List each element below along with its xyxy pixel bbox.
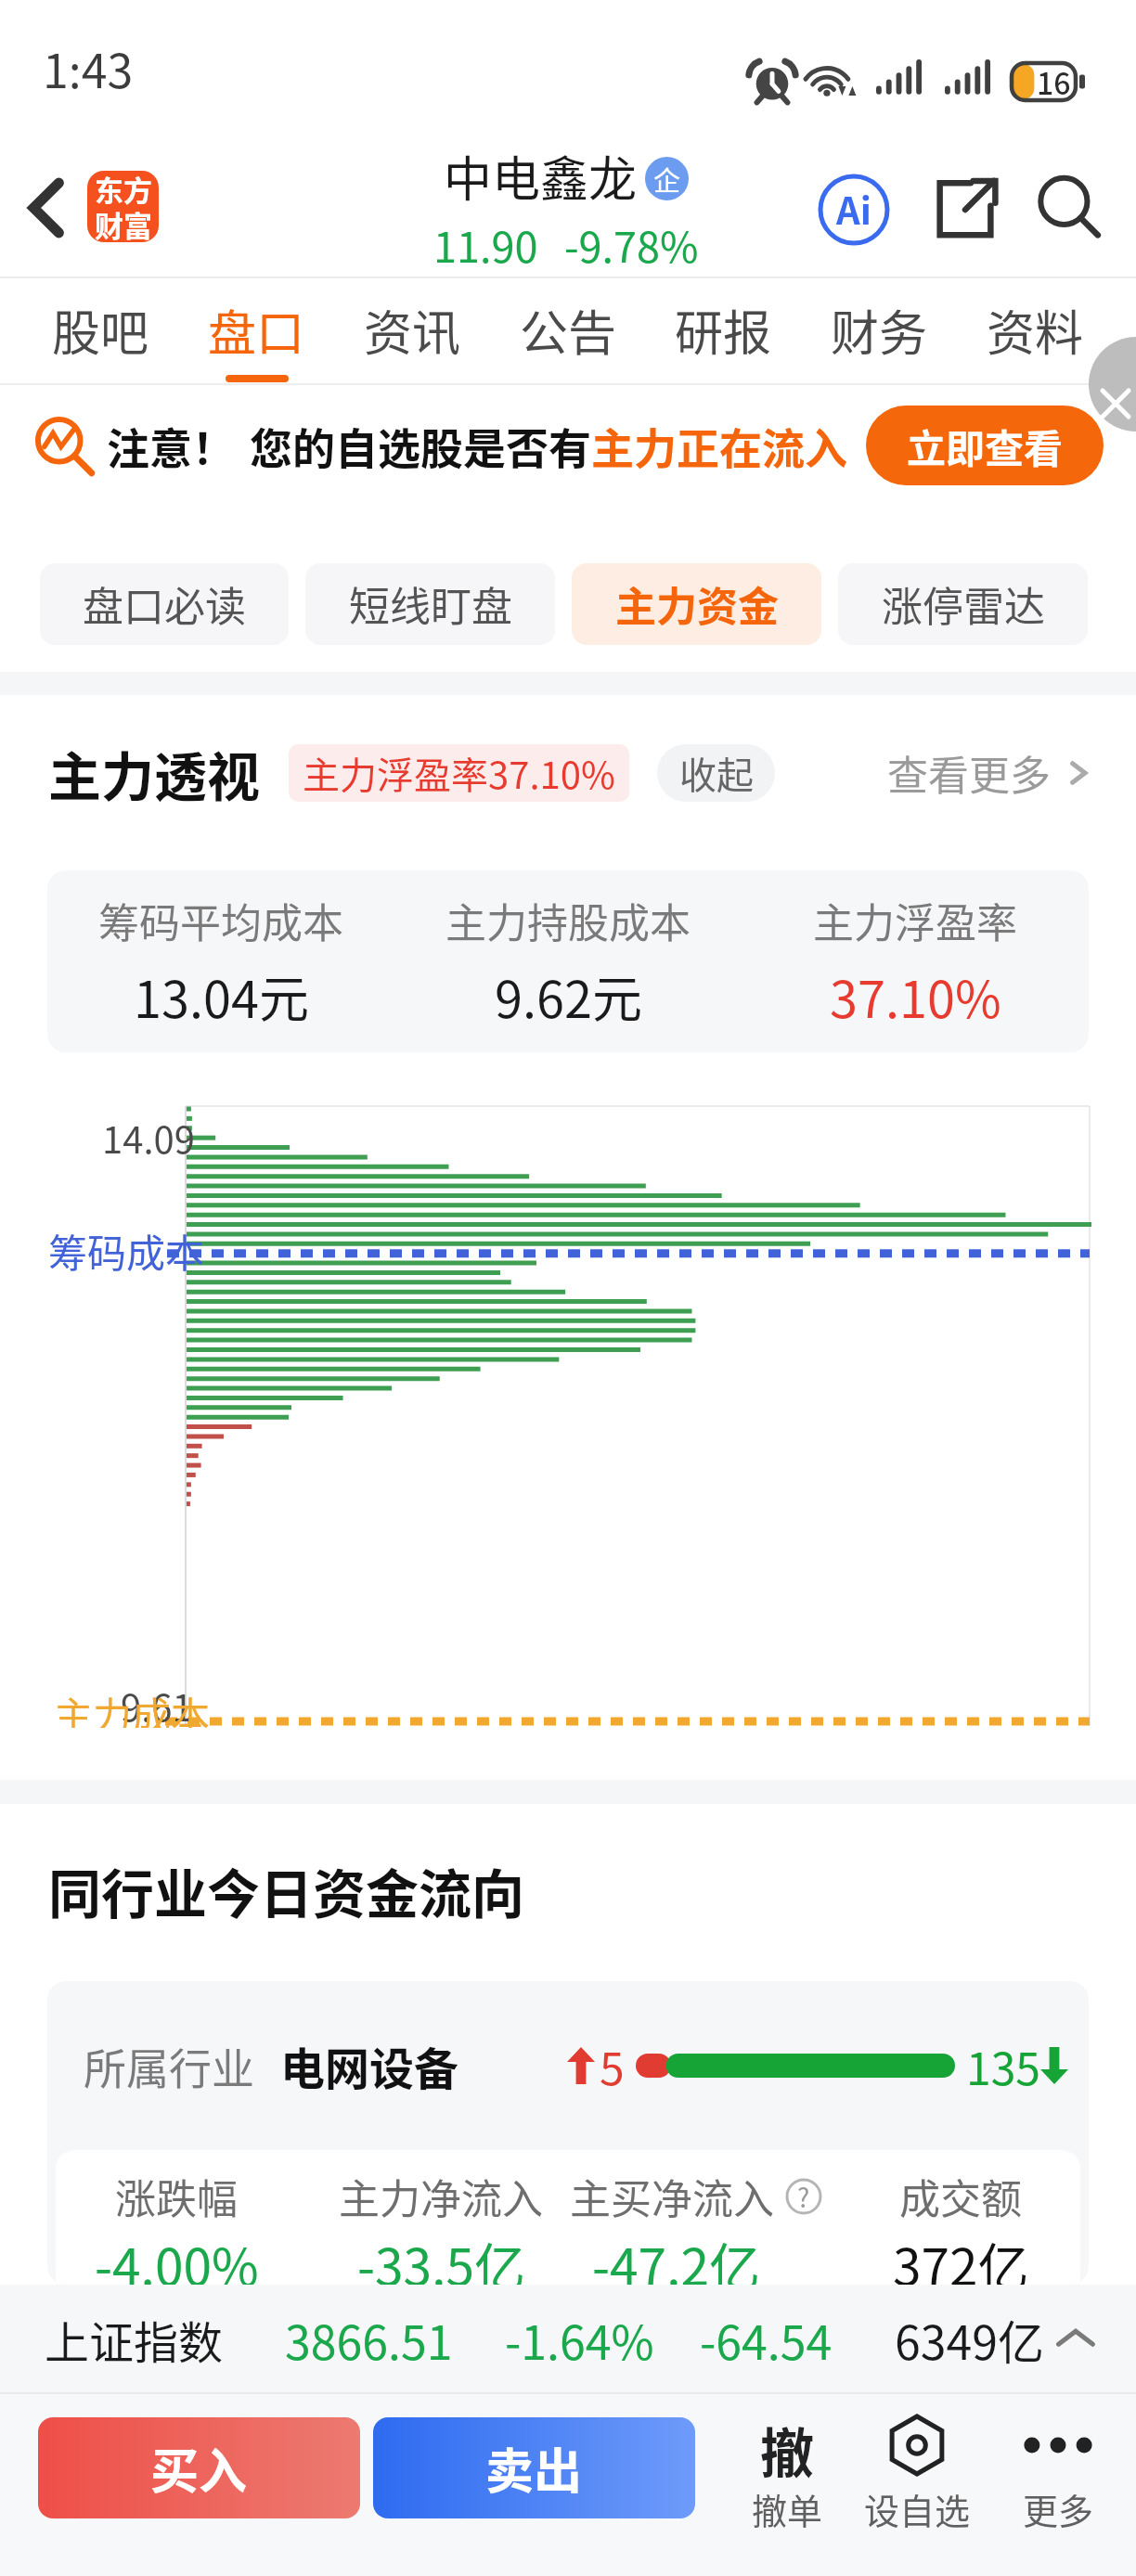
staticText: 股吧 [52,295,149,365]
staticText: -1.64% [505,2306,654,2373]
button[interactable]: 返回 [13,175,78,240]
staticText: 13.04元 [134,960,309,1032]
button[interactable]: 展开 [1050,2313,1102,2365]
staticText: 所属行业 [84,2035,254,2097]
staticText: 公告 [520,295,617,365]
button[interactable]: 立即查看 [866,406,1104,485]
staticText: 资讯 [364,295,461,365]
button[interactable]: 短线盯盘 [305,563,555,645]
staticText: Ai [836,182,871,236]
staticText: 成交额 [899,2167,1022,2226]
staticText: 主力透视 [48,735,260,812]
staticText: 财务 [831,295,928,365]
staticText: 14.09 [102,1111,195,1165]
staticText: ? [797,2178,810,2215]
staticText: 您的自选股是否有 [250,415,591,477]
staticText: 卖出 [485,2433,583,2503]
staticText: 盘口必读 [83,574,246,634]
button[interactable]: 买入 [38,2417,360,2518]
staticText: -4.00% [95,2226,259,2285]
button[interactable]: 收起 [657,744,775,802]
staticText: 主力浮盈率37.10% [303,746,615,800]
staticText: 9.62元 [495,960,642,1032]
button[interactable]: 盘口 [208,277,305,385]
button[interactable]: 资讯 [364,277,461,385]
staticText: 筹码平均成本 [98,891,343,950]
staticText: 资料 [987,295,1084,365]
button[interactable]: 股吧 [52,277,149,385]
button[interactable]: 公告 [520,277,617,385]
staticText: 更多 [1023,2483,1094,2534]
staticText: -64.54 [700,2306,833,2373]
button[interactable]: 更多 [1004,2411,1112,2534]
staticText: 5 [600,2033,625,2098]
staticText: 企 [653,160,681,199]
staticText: 研报 [675,295,772,365]
staticText: 设自选 [864,2483,971,2534]
staticText: 撤单 [752,2483,823,2534]
staticText: 涨跌幅 [115,2167,238,2226]
button[interactable]: 主力资金 [572,563,821,645]
staticText: 同行业今日资金流向 [48,1852,524,1929]
staticText: 135 [966,2033,1040,2098]
staticText: -33.5亿 [357,2226,525,2285]
staticText: 收起 [679,746,754,800]
staticText: 16 [1037,60,1071,101]
staticText: 主力浮盈率 [813,891,1017,950]
button[interactable]: 上证指数 [0,2285,1136,2394]
staticText: 主买净流入 [570,2167,774,2226]
staticText: 主力正在流入 [591,415,847,477]
staticText: 主力持股成本 [445,891,691,950]
button[interactable]: 关闭 [1084,385,1136,437]
staticText: 11.90 [433,214,538,275]
staticText: 东方 [95,171,152,210]
button[interactable]: 设自选 [863,2411,971,2534]
button[interactable]: 涨停雷达 [838,563,1088,645]
staticText: 财富 [95,203,152,242]
staticText: 3866.51 [285,2306,453,2373]
staticText: 电网设备 [280,2033,459,2098]
staticText: 短线盯盘 [349,574,512,634]
staticText: 372亿 [893,2226,1029,2285]
button[interactable]: 查看更多 [887,743,1093,803]
staticText: 上证指数 [45,2307,224,2372]
staticText: 中电鑫龙 [444,141,638,211]
staticText: 涨停雷达 [882,574,1045,634]
staticText: -9.78% [564,214,699,275]
button[interactable]: 财务 [831,277,928,385]
button[interactable]: 主力浮盈率37.10% [303,744,615,802]
staticText: 撤 [760,2411,815,2479]
staticText: 1:43 [43,34,134,101]
button[interactable]: 盘口必读 [40,563,289,645]
staticText: 37.10% [830,960,1001,1032]
button[interactable]: AI助手 [815,171,893,249]
staticText: 主力成本 [54,1685,211,1728]
button[interactable]: 资料 [987,277,1084,385]
button[interactable]: 搜索 [1032,171,1110,249]
button[interactable]: 分享 [926,171,1004,249]
staticText: 主力资金 [615,574,779,634]
staticText: 买入 [150,2433,248,2503]
staticText: 查看更多 [887,743,1051,803]
button[interactable]: 卖出 [373,2417,695,2518]
button[interactable]: 撤 [733,2411,841,2534]
button[interactable]: 研报 [675,277,772,385]
staticText: 主力净流入 [339,2167,543,2226]
staticText: 筹码成本 [48,1222,205,1279]
staticText: 注意！ [107,415,235,477]
staticText: 立即查看 [907,418,1064,474]
staticText: 盘口 [208,295,305,365]
staticText: -47.2亿 [592,2226,760,2285]
staticText: 6349亿 [895,2306,1044,2373]
button[interactable]: 东方财富 [87,171,159,242]
staticText: 9.61 [121,1679,193,1728]
